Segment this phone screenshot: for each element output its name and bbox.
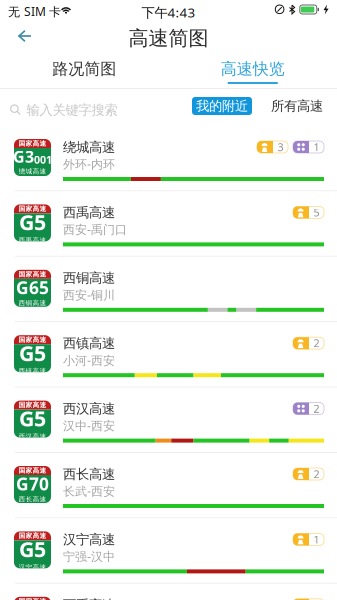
staticText: 路况简图	[52, 59, 116, 79]
staticText: 西安-禹门口	[63, 221, 127, 237]
button[interactable]: 返回	[5, 21, 45, 51]
button[interactable]: 国家高速	[0, 191, 337, 257]
staticText: 国家高速	[18, 336, 46, 344]
staticText: 西禹高速	[63, 204, 115, 221]
button[interactable]: 高速快览	[168, 50, 337, 90]
staticText: 2	[313, 467, 319, 481]
staticText: 宁强-汉中	[63, 548, 115, 564]
staticText: 1	[313, 140, 319, 154]
staticText: 西长高速	[18, 495, 46, 503]
staticText: 下午4:43	[141, 3, 195, 21]
staticText: 西铜高速	[63, 270, 115, 286]
staticText: 2	[313, 336, 319, 350]
button[interactable]: 路况简图	[0, 50, 168, 90]
button[interactable]: 国家高速	[0, 388, 337, 453]
staticText: 国家高速	[18, 597, 46, 600]
staticText: 001	[34, 153, 52, 167]
staticText: 汉宁高速	[63, 531, 115, 548]
button[interactable]: 国家高速	[0, 584, 337, 600]
button[interactable]: 所有高速	[269, 97, 325, 115]
staticText: 汉宁高速	[18, 563, 46, 571]
staticText: 无 SIM 卡	[8, 3, 61, 19]
staticText: 国家高速	[18, 205, 46, 213]
staticText: 5	[313, 205, 319, 219]
button[interactable]: 国家高速	[0, 322, 337, 388]
staticText: G5	[19, 208, 46, 236]
button[interactable]: 我的附近	[192, 97, 252, 115]
staticText: 外环-内环	[63, 156, 115, 172]
staticText: G5	[19, 339, 46, 367]
staticText: G5	[19, 404, 46, 432]
staticText: 1	[313, 598, 319, 600]
staticText: G5	[19, 535, 46, 563]
staticText: 我的附近	[196, 98, 248, 114]
staticText: 国家高速	[18, 532, 46, 540]
staticText: 2	[313, 401, 319, 416]
staticText: 汉中-西安	[63, 418, 115, 433]
staticText: 西汉高速	[63, 401, 115, 417]
staticText: 西铜高速	[18, 299, 46, 307]
staticText: G3	[13, 146, 34, 167]
staticText: 绕城高速	[63, 139, 115, 155]
staticText: 小河-西安	[63, 352, 115, 368]
button[interactable]: 国家高速	[0, 257, 337, 322]
staticText: 长武-西安	[63, 483, 115, 499]
button[interactable]: 国家高速	[0, 518, 337, 584]
button[interactable]: 国家高速	[0, 126, 337, 191]
staticText: G65	[16, 276, 49, 299]
staticText: 西安-铜川	[63, 287, 115, 303]
staticText: 西禹高速	[63, 597, 115, 600]
staticText: 1	[313, 532, 319, 546]
staticText: 高速简图	[128, 26, 208, 51]
staticText: 输入关键字搜索	[26, 102, 117, 118]
button[interactable]: 国家高速	[0, 453, 337, 518]
staticText: 绕城高速	[18, 167, 46, 175]
staticText: 西汉高速	[18, 432, 46, 441]
staticText: 西镇高速	[63, 335, 115, 352]
staticText: 西长高速	[63, 466, 115, 482]
staticText: 高速快览	[221, 59, 285, 79]
staticText: 国家高速	[18, 139, 46, 148]
staticText: 3	[277, 140, 283, 154]
staticText: 西镇高速	[18, 367, 46, 375]
staticText: 所有高速	[271, 98, 323, 114]
button[interactable]: 输入关键字搜索	[0, 96, 180, 124]
staticText: 国家高速	[18, 466, 46, 475]
staticText: 国家高速	[18, 270, 46, 278]
staticText: 国家高速	[18, 401, 46, 409]
staticText: G70	[16, 472, 49, 495]
staticText: 西禹高速	[18, 236, 46, 244]
